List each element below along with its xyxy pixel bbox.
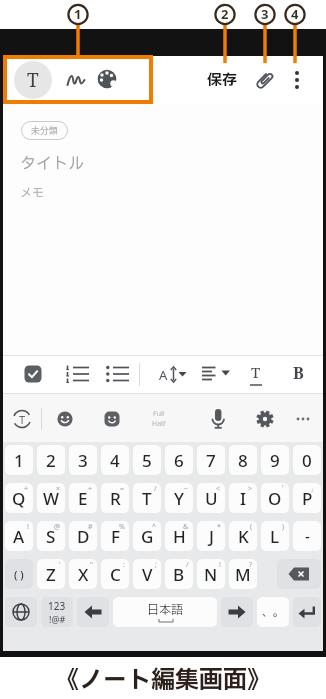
button[interactable]: - xyxy=(293,521,321,551)
staticText: 6 xyxy=(174,449,184,472)
button[interactable]: 4 xyxy=(101,445,129,475)
button[interactable]: I xyxy=(229,483,257,513)
staticText: Q xyxy=(12,487,26,510)
button[interactable] xyxy=(253,68,277,92)
button[interactable]: ( ) xyxy=(5,559,33,589)
button[interactable]: 2 xyxy=(37,445,65,475)
button[interactable]: K xyxy=(229,521,257,551)
button[interactable]: P xyxy=(293,483,321,513)
button[interactable] xyxy=(64,68,88,92)
button[interactable]: 3 xyxy=(69,445,97,475)
button[interactable] xyxy=(55,409,75,429)
button[interactable]: H xyxy=(165,521,193,551)
staticText: タイトル xyxy=(20,152,85,176)
button[interactable]: T xyxy=(10,407,34,431)
button[interactable]: D xyxy=(69,521,97,551)
button[interactable]: 6 xyxy=(165,445,193,475)
staticText: 3 xyxy=(78,449,88,472)
button[interactable]: 5 xyxy=(133,445,161,475)
button[interactable]: 0 xyxy=(293,445,321,475)
button[interactable] xyxy=(95,67,119,91)
button[interactable]: J xyxy=(197,521,225,551)
button[interactable]: M xyxy=(229,559,257,589)
staticText: 3 xyxy=(261,5,269,23)
button[interactable]: L xyxy=(261,521,289,551)
staticText: ; xyxy=(155,560,157,570)
button[interactable]: E xyxy=(69,483,97,513)
staticText: W xyxy=(43,487,59,510)
button[interactable]: T xyxy=(14,61,52,99)
button[interactable]: Z xyxy=(37,559,65,589)
button[interactable]: 8 xyxy=(229,445,257,475)
staticText: ( ) xyxy=(14,567,24,582)
staticText: V xyxy=(142,563,153,586)
staticText: 0 xyxy=(302,449,312,472)
staticText: J xyxy=(209,525,214,548)
staticText: B xyxy=(293,362,304,384)
button[interactable] xyxy=(77,597,109,627)
button[interactable] xyxy=(24,365,42,383)
staticText: U xyxy=(205,487,218,510)
staticText: N xyxy=(204,563,218,586)
button[interactable]: 1 xyxy=(5,445,33,475)
staticText: ' xyxy=(59,560,61,570)
button[interactable]: 、。 xyxy=(257,597,289,627)
staticText: @ xyxy=(54,522,61,532)
staticText: 、。 xyxy=(262,604,284,621)
staticText: A xyxy=(13,525,25,548)
button[interactable] xyxy=(295,415,311,423)
button[interactable] xyxy=(255,409,275,429)
button[interactable] xyxy=(102,409,122,429)
button[interactable] xyxy=(277,559,321,589)
staticText: I xyxy=(240,487,247,510)
button[interactable] xyxy=(106,365,130,383)
button[interactable]: 9 xyxy=(261,445,289,475)
button[interactable]: A xyxy=(157,362,197,387)
staticText: : xyxy=(123,560,125,570)
staticText: 4 xyxy=(291,5,299,23)
button[interactable]: 未分類 xyxy=(21,121,68,140)
staticText: T xyxy=(142,487,152,510)
button[interactable] xyxy=(221,597,253,627)
staticText: H xyxy=(173,525,186,548)
button[interactable] xyxy=(5,597,37,627)
button[interactable] xyxy=(209,408,227,430)
button[interactable]: B xyxy=(289,362,307,387)
button[interactable]: N xyxy=(197,559,225,589)
button[interactable]: B xyxy=(165,559,193,589)
button[interactable]: Full xyxy=(144,405,174,433)
button[interactable]: R xyxy=(101,483,129,513)
button[interactable]: W xyxy=(37,483,65,513)
button[interactable]: Y xyxy=(165,483,193,513)
button[interactable] xyxy=(66,365,90,383)
staticText: 1 xyxy=(74,5,82,23)
staticText: 《ノート編集画面》 xyxy=(55,663,271,693)
button[interactable]: T xyxy=(246,362,266,387)
button[interactable]: T xyxy=(133,483,161,513)
button[interactable]: O xyxy=(261,483,289,513)
button[interactable]: Q xyxy=(5,483,33,513)
button[interactable]: 7 xyxy=(197,445,225,475)
button[interactable]: C xyxy=(101,559,129,589)
button[interactable]: 日本語 xyxy=(113,597,217,627)
staticText: 123 xyxy=(48,599,66,613)
staticText: 未分類 xyxy=(31,124,59,137)
staticText: * xyxy=(217,522,221,532)
button[interactable] xyxy=(293,597,321,627)
button[interactable] xyxy=(289,68,305,92)
staticText: 」 xyxy=(310,484,317,493)
button[interactable] xyxy=(202,366,232,382)
button[interactable]: F xyxy=(101,521,129,551)
button[interactable]: V xyxy=(133,559,161,589)
button[interactable]: U xyxy=(197,483,225,513)
button[interactable]: 123 xyxy=(41,597,73,627)
button[interactable]: X xyxy=(69,559,97,589)
staticText: Z xyxy=(46,563,56,586)
button[interactable]: G xyxy=(133,521,161,551)
staticText: ÷ xyxy=(88,484,93,494)
button[interactable]: 保存 xyxy=(201,68,243,92)
staticText: R xyxy=(110,487,121,510)
staticText: L xyxy=(270,525,280,548)
button[interactable]: A xyxy=(5,521,33,551)
button[interactable]: S xyxy=(37,521,65,551)
